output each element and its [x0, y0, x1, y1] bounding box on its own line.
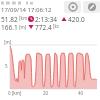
- staticText: [m]: [19, 24, 27, 30]
- staticText: 17/09/14 17:06:12: [1, 6, 52, 14]
- staticText: [m]: [4, 39, 12, 45]
- staticText: 772.4: [35, 23, 52, 30]
- staticText: 166.1: [1, 23, 18, 30]
- staticText: 420.0: [68, 15, 85, 22]
- staticText: 2:13:34: [35, 15, 58, 22]
- staticText: 0 [km]: [8, 90, 22, 96]
- staticText: 20: [43, 90, 49, 96]
- button[interactable]: Locate: [64, 1, 81, 13]
- button[interactable]: Edit: [83, 1, 100, 13]
- staticText: 40: [78, 90, 84, 96]
- staticText: 5: [5, 63, 8, 69]
- staticText: [kcal]: [53, 23, 61, 30]
- staticText: 51.82: [1, 15, 18, 22]
- staticText: [km]: [19, 15, 28, 22]
